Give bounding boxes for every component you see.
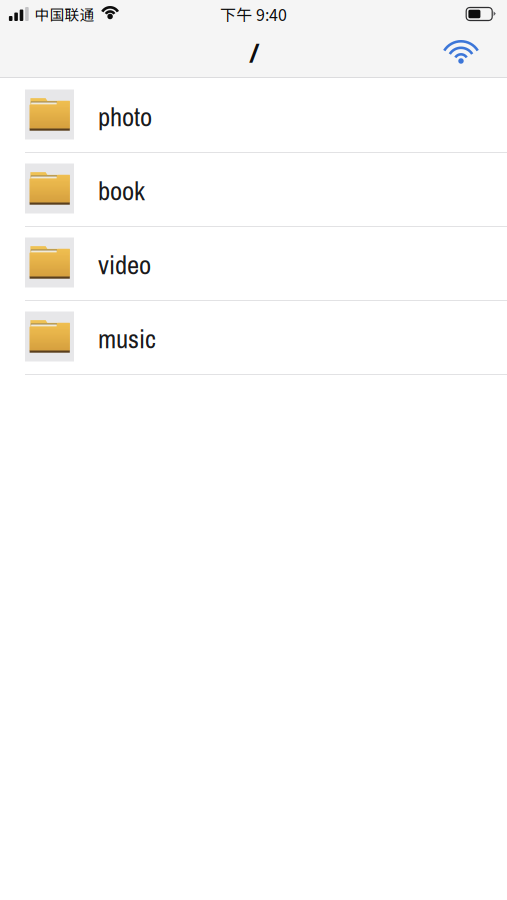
button[interactable]: book <box>0 153 507 227</box>
staticText: book <box>98 172 145 208</box>
button[interactable]: photo <box>0 79 507 153</box>
button[interactable]: video <box>0 227 507 301</box>
staticText: / <box>249 35 260 70</box>
button[interactable]: music <box>0 301 507 375</box>
staticText: 下午 9:40 <box>220 2 287 26</box>
staticText: photo <box>98 98 152 134</box>
button[interactable]: Wi-Fi <box>429 22 493 84</box>
staticText: video <box>98 246 151 282</box>
staticText: music <box>98 320 156 356</box>
staticText: 中国联通 <box>35 3 95 25</box>
